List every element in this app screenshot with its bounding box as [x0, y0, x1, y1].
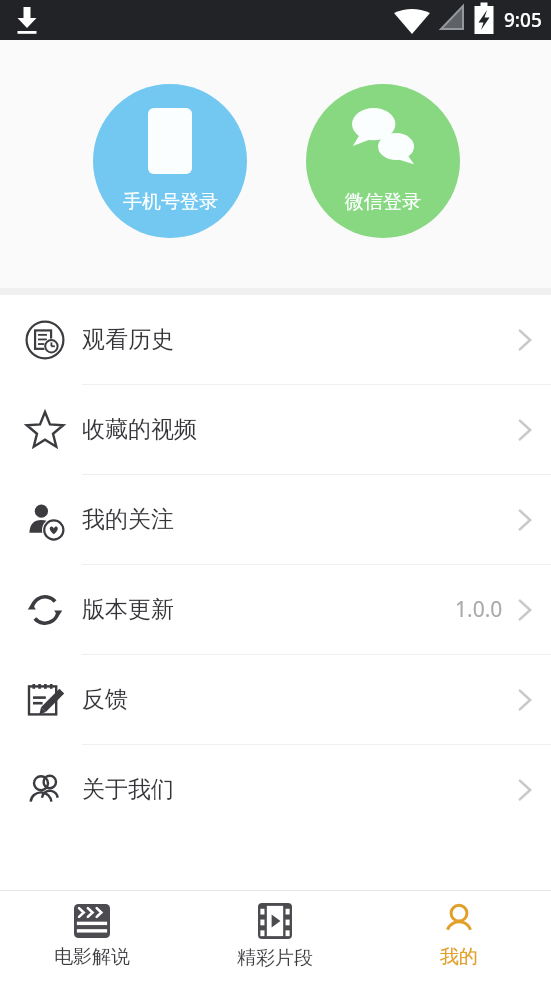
staticText: 9:05 [504, 7, 542, 33]
button[interactable]: 收藏的视频 [0, 385, 551, 475]
staticText: 电影解说 [54, 945, 130, 969]
staticText: 我的 [440, 945, 478, 969]
button[interactable]: 关于我们 [0, 745, 551, 834]
staticText: 反馈 [82, 685, 128, 714]
staticText: 版本更新 [82, 595, 174, 624]
staticText: 1.0.0 [455, 595, 503, 624]
staticText: 微信登录 [345, 190, 421, 214]
button[interactable]: Login with WeChat [306, 84, 460, 238]
button[interactable]: 版本更新 [0, 565, 551, 655]
staticText: 精彩片段 [237, 946, 313, 970]
staticText: 我的关注 [82, 505, 174, 534]
button[interactable]: 观看历史 [0, 295, 551, 385]
staticText: 关于我们 [82, 775, 174, 804]
staticText: 观看历史 [82, 325, 174, 354]
button[interactable]: 我的 [367, 891, 551, 981]
button[interactable]: 精彩片段 [183, 891, 367, 981]
button[interactable]: 我的关注 [0, 475, 551, 565]
button[interactable]: 反馈 [0, 655, 551, 745]
staticText: 手机号登录 [123, 190, 218, 214]
button[interactable]: 电影解说 [0, 891, 183, 981]
button[interactable]: Login with phone number [93, 84, 247, 238]
staticText: 收藏的视频 [82, 415, 197, 444]
